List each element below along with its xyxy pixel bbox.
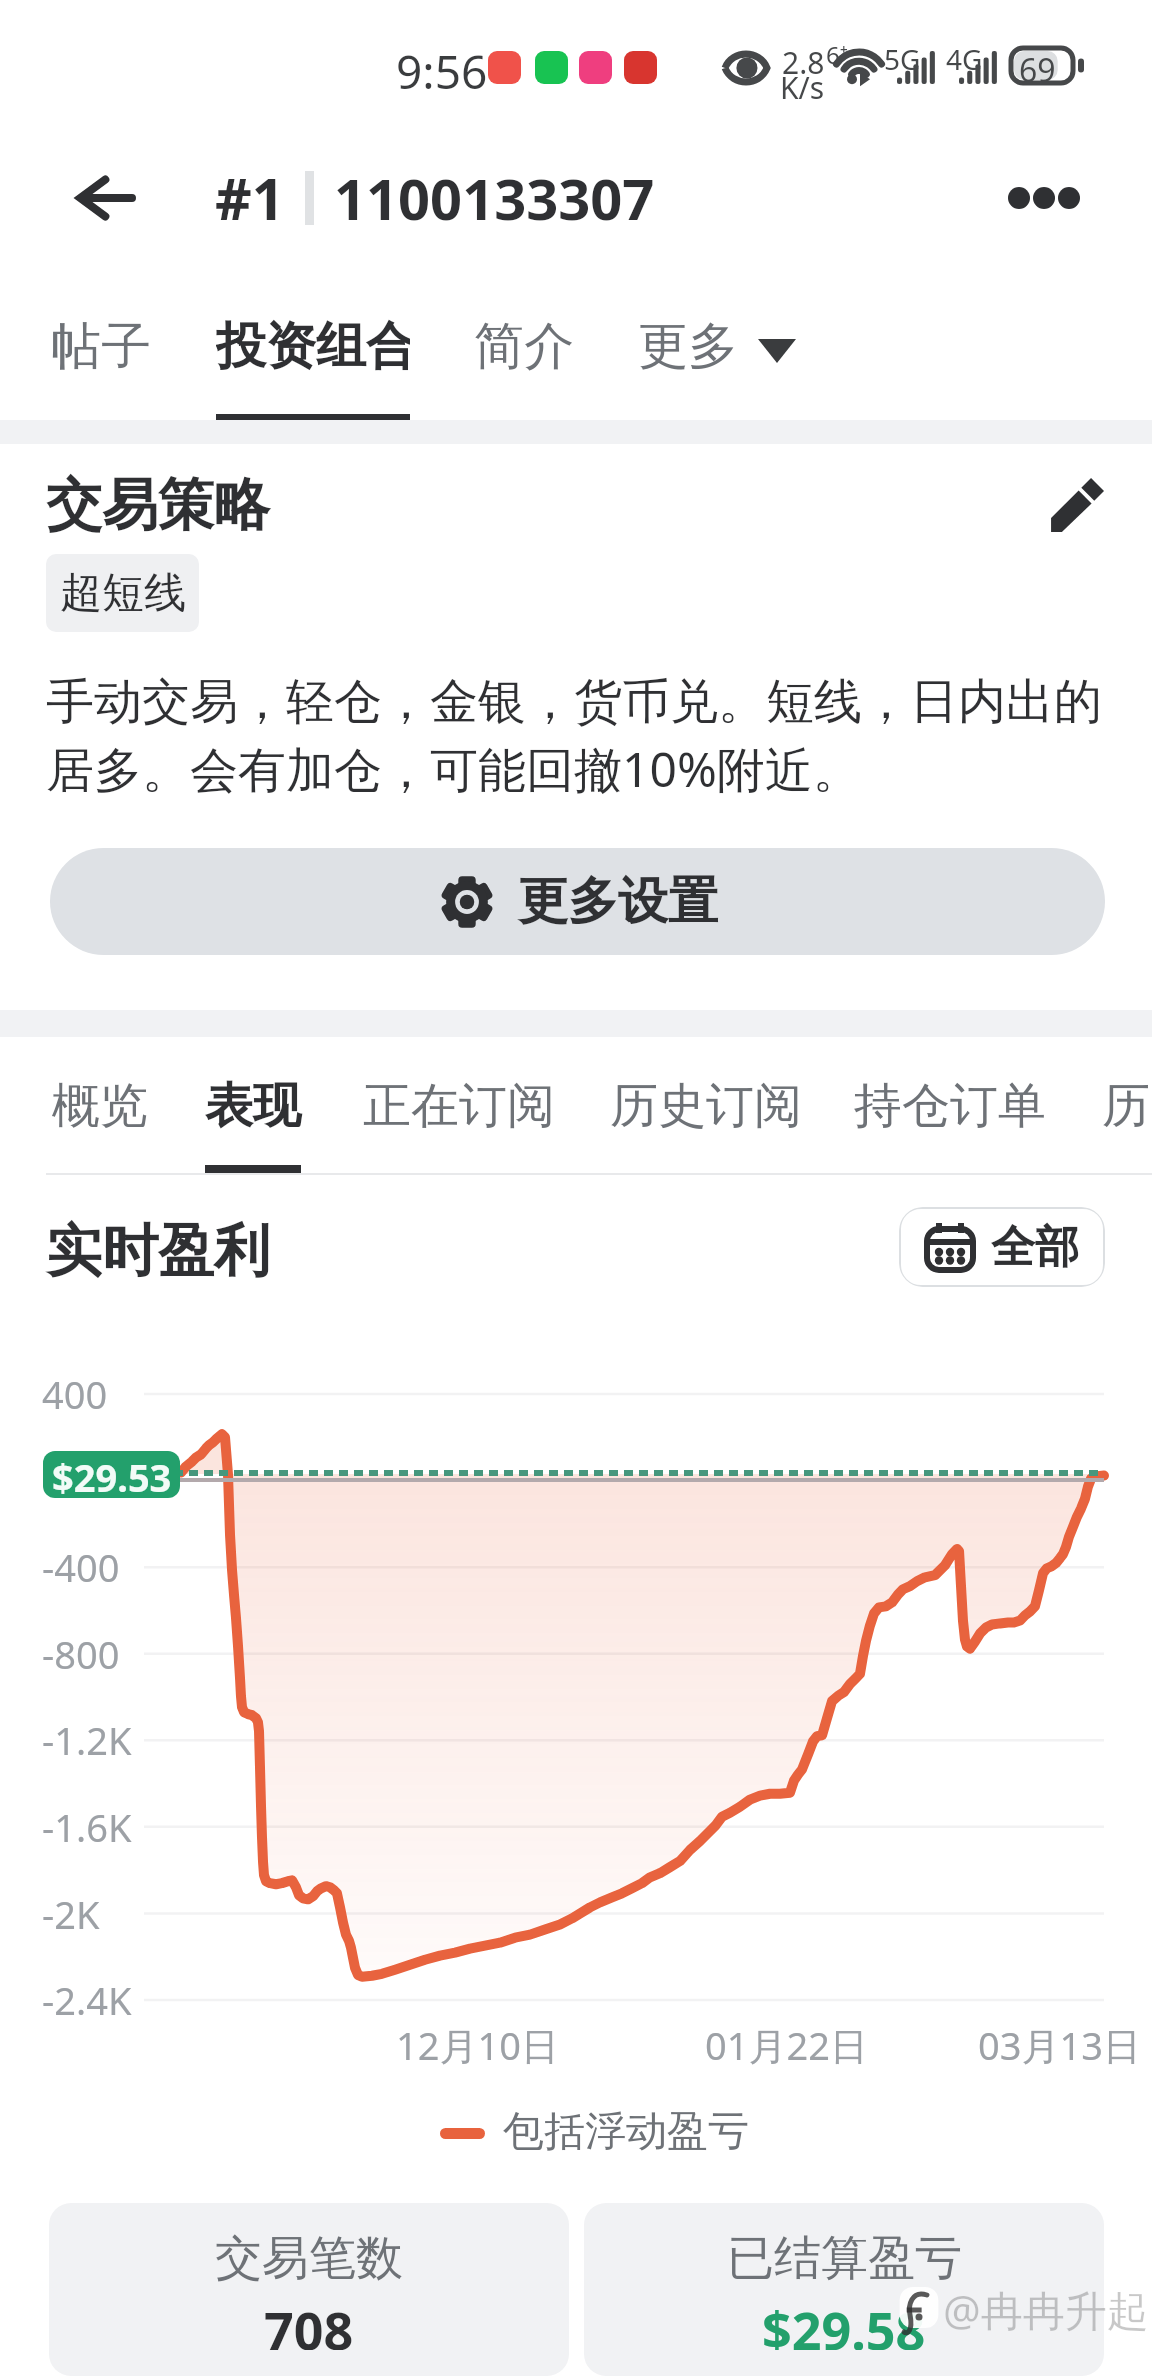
staticText: -1.6K — [42, 1801, 132, 1853]
staticText: 更多设置 — [518, 870, 718, 933]
button[interactable]: More options — [984, 138, 1104, 258]
button[interactable]: 持仓订单 — [854, 1037, 1046, 1136]
staticText: 400 — [42, 1368, 108, 1420]
staticText: 交易策略 — [46, 470, 270, 541]
staticText: -800 — [42, 1628, 120, 1680]
staticText: 5G — [884, 40, 921, 78]
staticText: 手动交易，轻仓，金银，货币兑。短线，日内出的居多。会有加仓，可能回撤10%附近。 — [46, 672, 1146, 801]
button[interactable]: Edit — [1038, 466, 1116, 544]
staticText: 简介 — [474, 315, 572, 378]
staticText: 表现 — [205, 1076, 301, 1136]
button[interactable]: 投资组合 — [216, 283, 410, 420]
staticText: 投资组合 — [216, 315, 410, 378]
staticText: -1.2K — [42, 1714, 132, 1766]
staticText: 包括浮动盈亏 — [503, 2106, 749, 2158]
button[interactable]: 已结算盈亏 — [584, 2203, 1104, 2376]
staticText: 9:56 — [396, 40, 488, 103]
staticText: 概览 — [52, 1076, 148, 1136]
button[interactable]: 全部 — [899, 1207, 1105, 1287]
staticText: 6⁺ — [826, 38, 848, 71]
staticText: 1100133307 — [334, 160, 655, 236]
staticText: 历史订阅 — [610, 1076, 802, 1136]
button[interactable]: 表现 — [205, 1037, 301, 1173]
button[interactable]: 更多 — [638, 283, 796, 378]
staticText: #1 — [215, 159, 285, 237]
staticText: 12月10日 — [396, 2019, 559, 2071]
staticText: 03月13日 — [978, 2019, 1141, 2071]
staticText: 交易笔数 — [215, 2229, 403, 2288]
staticText: -400 — [42, 1541, 120, 1593]
staticText: 帖子 — [51, 315, 149, 378]
button[interactable]: 概览 — [52, 1037, 148, 1136]
button[interactable]: 正在订阅 — [363, 1037, 555, 1136]
staticText: 实时盈利 — [46, 1216, 270, 1287]
staticText: K/s — [780, 67, 825, 108]
staticText: $29.53 — [52, 1451, 172, 1498]
staticText: 持仓订单 — [854, 1076, 1046, 1136]
button[interactable]: 简介 — [474, 283, 572, 378]
button[interactable]: 交易笔数 — [49, 2203, 569, 2376]
button[interactable]: 更多设置 — [50, 848, 1105, 955]
button[interactable]: Back — [58, 153, 154, 243]
button[interactable]: 历史 — [1102, 1037, 1152, 1136]
staticText: 2.8 — [782, 42, 825, 83]
staticText: 已结算盈亏 — [727, 2229, 962, 2288]
button[interactable]: 超短线 — [46, 554, 199, 632]
staticText: 全部 — [991, 1220, 1079, 1275]
staticText: 4G — [946, 40, 983, 78]
staticText: $29.58 — [762, 2294, 926, 2350]
staticText: 更多 — [638, 315, 738, 378]
staticText: -2K — [42, 1888, 100, 1940]
staticText: 708 — [264, 2294, 354, 2350]
staticText: 超短线 — [60, 567, 186, 620]
staticText: 69 — [1019, 48, 1056, 92]
button[interactable]: 帖子 — [51, 283, 149, 378]
staticText: 正在订阅 — [363, 1076, 555, 1136]
button[interactable]: 历史订阅 — [610, 1037, 802, 1136]
staticText: @冉冉升起 — [943, 2281, 1149, 2338]
staticText: 01月22日 — [705, 2019, 868, 2071]
staticText: 历史 — [1102, 1076, 1152, 1136]
staticText: -2.4K — [42, 1974, 132, 2026]
